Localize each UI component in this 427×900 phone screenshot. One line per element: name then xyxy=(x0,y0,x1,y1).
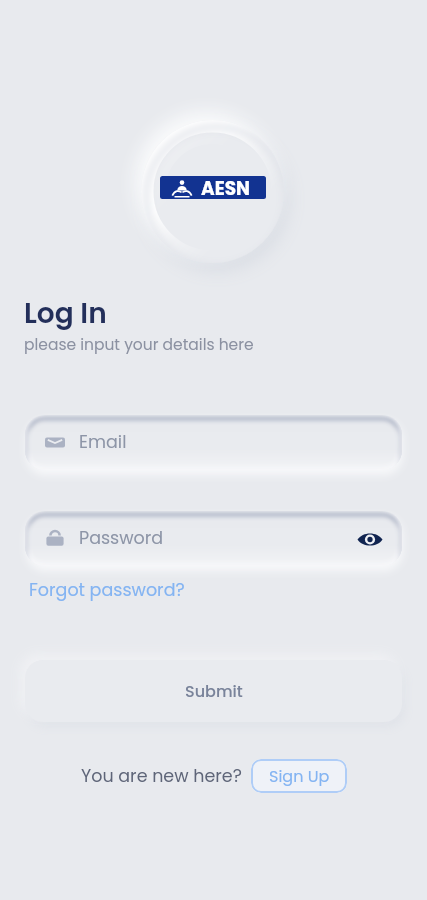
staticText: AESN xyxy=(201,176,250,199)
staticText: Email xyxy=(79,430,127,455)
staticText: Sign Up xyxy=(269,765,330,787)
button[interactable]: Submit xyxy=(25,660,402,722)
button[interactable]: Sign Up xyxy=(251,759,347,793)
button[interactable]: Show password xyxy=(355,524,385,554)
staticText: You are new here? xyxy=(81,764,242,789)
staticText: Forgot password? xyxy=(29,578,185,603)
button[interactable]: AESN logo xyxy=(160,176,266,199)
button[interactable] xyxy=(25,415,402,470)
button[interactable] xyxy=(25,511,402,566)
staticText: please input your details here xyxy=(24,334,254,356)
button[interactable]: Forgot password? xyxy=(29,578,185,603)
staticText: Password xyxy=(79,526,164,551)
staticText: Submit xyxy=(185,680,243,702)
staticText: Log In xyxy=(24,294,107,333)
